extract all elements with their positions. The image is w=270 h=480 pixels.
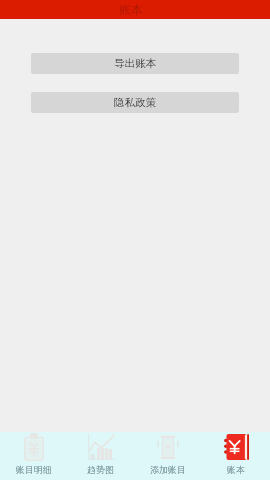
staticText: 导出账本: [114, 57, 156, 70]
button[interactable]: 添加账目: [134, 432, 202, 480]
other: 趋势图: [87, 433, 115, 461]
other: 添加账目: [157, 433, 179, 461]
other: 账本: [224, 434, 249, 460]
staticText: 账本: [227, 464, 245, 475]
staticText: 添加账目: [150, 464, 186, 475]
staticText: 账本: [119, 2, 143, 17]
button[interactable]: 趋势图: [67, 432, 134, 480]
staticText: 账目明细: [16, 464, 52, 475]
other: 账目明细: [24, 433, 44, 461]
staticText: 趋势图: [87, 464, 114, 475]
staticText: 隐私政策: [114, 96, 156, 109]
button[interactable]: 账目明细: [0, 432, 67, 480]
button[interactable]: 账本: [202, 432, 270, 480]
button[interactable]: 隐私政策: [31, 92, 239, 113]
button[interactable]: 导出账本: [31, 53, 239, 74]
